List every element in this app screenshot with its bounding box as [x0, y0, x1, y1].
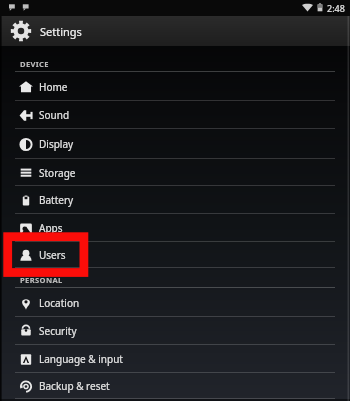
- button[interactable]: Language & input: [0, 345, 350, 373]
- staticText: Battery: [39, 193, 74, 207]
- staticText: DEVICE: [20, 59, 49, 69]
- button[interactable]: Home: [0, 72, 350, 101]
- staticText: Apps: [39, 221, 63, 235]
- button[interactable]: Display: [0, 129, 350, 159]
- button[interactable]: Battery: [0, 186, 350, 214]
- staticText: Users: [39, 248, 66, 262]
- button[interactable]: Security: [0, 316, 350, 345]
- staticText: Sound: [39, 108, 70, 122]
- staticText: Display: [39, 137, 74, 151]
- staticText: 2:48: [327, 2, 345, 14]
- button[interactable]: Storage: [0, 159, 350, 186]
- staticText: Language & input: [39, 352, 123, 366]
- button[interactable]: Backup & reset: [0, 373, 350, 399]
- button[interactable]: Settings, up: [0, 16, 350, 46]
- staticText: PERSONAL: [20, 275, 63, 285]
- button[interactable]: Apps: [0, 214, 350, 242]
- staticText: Location: [39, 296, 80, 310]
- button[interactable]: Sound: [0, 101, 350, 129]
- button[interactable]: Users: [0, 242, 350, 268]
- staticText: Home: [39, 80, 68, 94]
- button[interactable]: Location: [0, 289, 350, 317]
- staticText: Backup & reset: [39, 379, 110, 393]
- staticText: Storage: [39, 166, 76, 180]
- staticText: Settings: [40, 24, 82, 39]
- staticText: Security: [39, 324, 77, 338]
